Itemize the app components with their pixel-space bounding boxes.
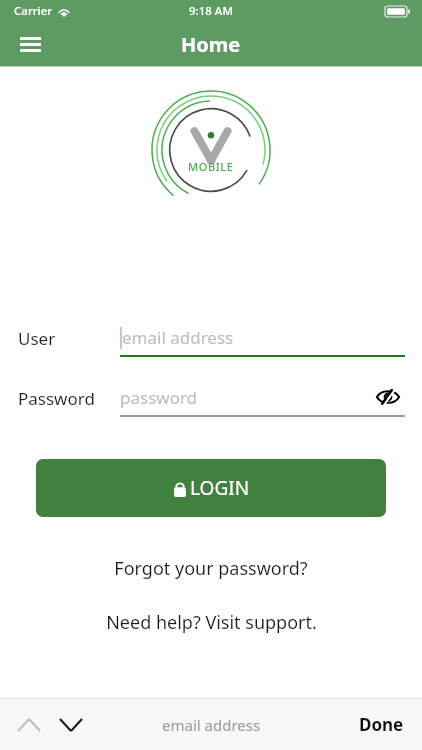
staticText: Forgot your password? bbox=[114, 556, 308, 581]
button[interactable]: Done bbox=[353, 705, 410, 744]
staticText: MOBILE bbox=[188, 159, 234, 174]
button[interactable]: Password bbox=[0, 379, 422, 417]
staticText: password bbox=[120, 386, 198, 409]
staticText: User bbox=[18, 327, 56, 350]
staticText: email address bbox=[122, 326, 234, 349]
staticText: Home bbox=[181, 31, 241, 58]
staticText: 9:18 AM bbox=[189, 3, 233, 19]
button[interactable]: LOGIN bbox=[36, 459, 386, 517]
staticText: email address bbox=[162, 715, 261, 735]
button[interactable]: Previous field bbox=[8, 704, 50, 746]
button[interactable]: Menu bbox=[10, 24, 50, 64]
staticText: LOGIN bbox=[190, 475, 250, 501]
button[interactable]: Show password bbox=[371, 380, 405, 414]
button[interactable]: User bbox=[0, 319, 422, 357]
staticText: Password bbox=[18, 387, 95, 410]
button[interactable]: Forgot your password? bbox=[0, 552, 422, 585]
button[interactable]: Next field bbox=[50, 704, 92, 746]
button[interactable]: Need help? Visit support. bbox=[0, 606, 422, 639]
staticText: Done bbox=[359, 713, 404, 736]
staticText: Carrier bbox=[14, 3, 53, 19]
staticText: Need help? Visit support. bbox=[106, 610, 317, 635]
